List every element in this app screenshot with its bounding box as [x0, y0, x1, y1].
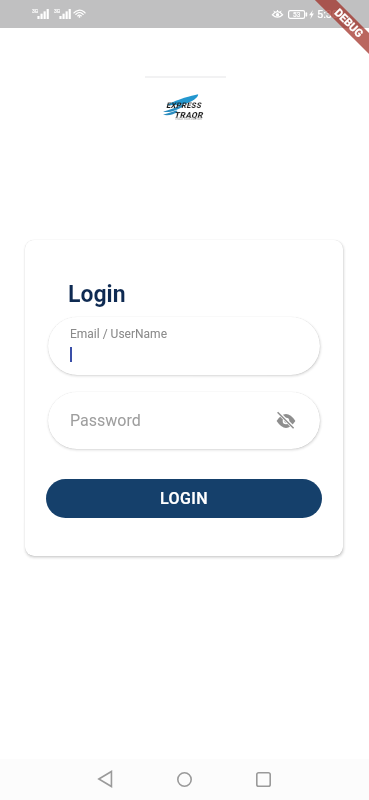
staticText: 3G — [54, 8, 61, 14]
button[interactable]: Show password — [274, 409, 298, 433]
staticText: DEBUG — [332, 6, 366, 41]
staticText: Email / UserName — [70, 327, 167, 341]
button[interactable]: Email / UserName — [48, 317, 320, 375]
staticText: 3G — [32, 8, 39, 14]
button[interactable]: Home — [164, 759, 204, 799]
staticText: 5:30 — [317, 8, 339, 21]
staticText: EXPRESS — [166, 101, 202, 110]
button[interactable]: Recents — [243, 759, 283, 799]
button[interactable]: LOGIN — [46, 479, 322, 518]
staticText: LOGIN — [160, 489, 208, 508]
button[interactable]: Back — [85, 759, 125, 799]
staticText: TRACK YOUR DELIVERY — [175, 118, 203, 121]
staticText: TRAQR — [174, 110, 203, 120]
staticText: Password — [70, 411, 141, 430]
staticText: Login — [68, 281, 126, 308]
button[interactable]: Password — [48, 392, 320, 449]
staticText: 53 — [293, 11, 301, 19]
